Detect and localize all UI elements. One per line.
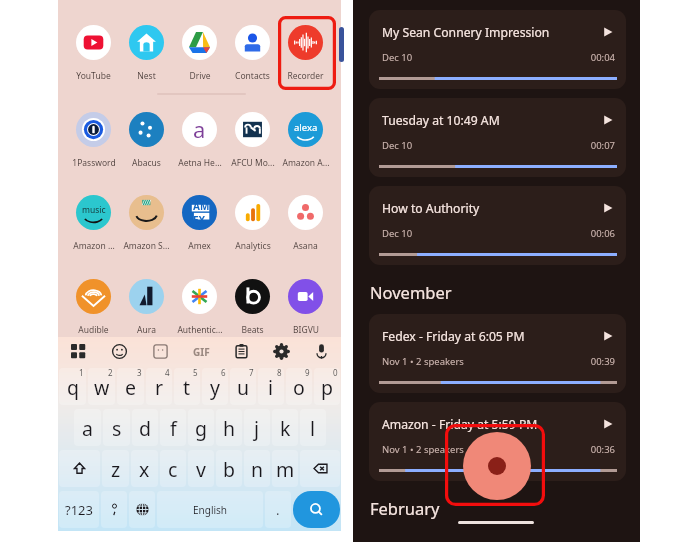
button[interactable]: Nest (120, 25, 173, 82)
button[interactable]: Play (598, 414, 618, 434)
staticText: . (276, 501, 280, 519)
button[interactable]: u (230, 368, 256, 405)
staticText: Audible (78, 324, 109, 336)
button[interactable]: globe (129, 491, 155, 528)
button[interactable]: BIGVU (279, 279, 332, 336)
button[interactable]: music (67, 195, 120, 252)
staticText: Amazon A... (282, 157, 330, 169)
button[interactable]: z (102, 450, 129, 487)
staticText: Drive (189, 70, 211, 82)
staticText: o (293, 374, 305, 401)
button[interactable]: ?123 (59, 491, 99, 528)
button[interactable]: g (188, 409, 214, 446)
button[interactable]: Aura (120, 279, 173, 336)
button[interactable]: Audible (67, 279, 120, 336)
staticText: n (251, 456, 264, 483)
button[interactable]: sticker (140, 337, 181, 366)
staticText: 3 (137, 368, 142, 378)
button[interactable]: Play (598, 22, 618, 42)
button[interactable]: s (103, 409, 130, 446)
staticText: Authentic... (177, 324, 223, 336)
staticText: music (82, 204, 106, 216)
staticText: My Sean Connery Impression (382, 24, 550, 41)
staticText: g (195, 415, 207, 442)
button[interactable]: Recorder (279, 25, 332, 82)
button[interactable]: a (173, 112, 226, 169)
button[interactable]: n (244, 450, 270, 487)
button[interactable]: AFCU Mo... (226, 112, 279, 169)
staticText: Dec 10 (382, 139, 413, 152)
staticText: Beats (241, 324, 264, 336)
staticText: English (193, 503, 228, 517)
button[interactable]: x (131, 450, 158, 487)
button[interactable]: f (160, 409, 186, 446)
button[interactable]: b (216, 450, 242, 487)
button[interactable]: e (117, 368, 144, 405)
button[interactable]: Contacts (226, 25, 279, 82)
button[interactable]: m (272, 450, 298, 487)
staticText: BIGVU (293, 324, 319, 336)
button[interactable]: grid (58, 337, 99, 366)
button[interactable]: backspace (300, 450, 340, 487)
button[interactable]: comma (101, 491, 127, 528)
button[interactable]: YouTube (67, 25, 120, 82)
button[interactable]: My Sean Connery Impression (369, 10, 626, 89)
staticText: x (139, 456, 150, 483)
button[interactable]: Drive (173, 25, 226, 82)
staticText: How to Authority (382, 200, 480, 217)
button[interactable]: Asana (279, 195, 332, 252)
button[interactable]: Amazon S... (120, 195, 173, 252)
button[interactable]: gif (181, 337, 221, 366)
button[interactable]: q (59, 368, 86, 405)
button[interactable]: c (160, 450, 186, 487)
button[interactable]: Tuesday at 10:49 AM (369, 98, 626, 177)
button[interactable]: mic (301, 337, 341, 366)
button[interactable]: 1Password (67, 112, 120, 169)
button[interactable]: . (265, 491, 291, 528)
button[interactable]: i (258, 368, 284, 405)
button[interactable]: a (74, 409, 101, 446)
staticText: Nest (137, 70, 156, 82)
staticText: k (280, 415, 291, 442)
button[interactable]: Fedex - Friday at 6:05 PM (369, 314, 626, 393)
button[interactable]: r (146, 368, 172, 405)
button[interactable]: v (188, 450, 214, 487)
button[interactable]: Abacus (120, 112, 173, 169)
button[interactable]: k (272, 409, 298, 446)
button[interactable]: Play (598, 326, 618, 346)
staticText: 00:04 (590, 51, 615, 64)
staticText: 8 (277, 368, 282, 378)
staticText: f (170, 415, 177, 442)
button[interactable]: o (286, 368, 312, 405)
staticText: 5 (193, 368, 198, 378)
button[interactable]: Authentic... (173, 279, 226, 336)
button[interactable]: w (88, 368, 115, 405)
button[interactable]: d (132, 409, 158, 446)
button[interactable]: y (202, 368, 228, 405)
staticText: Nov 1 • 2 speakers (382, 443, 464, 456)
button[interactable]: shift (59, 450, 100, 487)
button[interactable]: Play (598, 110, 618, 130)
staticText: Aetna He... (178, 157, 222, 169)
button[interactable]: Search (293, 491, 340, 528)
button[interactable]: Beats (226, 279, 279, 336)
button[interactable]: j (244, 409, 270, 446)
button[interactable]: t (174, 368, 200, 405)
button[interactable]: l (300, 409, 326, 446)
staticText: v (196, 456, 206, 483)
button[interactable]: h (216, 409, 242, 446)
button[interactable]: Analytics (226, 195, 279, 252)
button[interactable]: alexa (279, 112, 332, 169)
button[interactable]: emoji (99, 337, 140, 366)
button[interactable]: Play (598, 198, 618, 218)
staticText: h (223, 415, 236, 442)
button[interactable]: settings (261, 337, 301, 366)
staticText: Fedex - Friday at 6:05 PM (382, 328, 525, 345)
staticText: Asana (293, 240, 318, 252)
button[interactable]: p (314, 368, 340, 405)
button[interactable]: clipboard (221, 337, 261, 366)
button[interactable]: AM EX (173, 195, 226, 252)
button[interactable]: Amazon - Friday at 5:59 PM (369, 402, 626, 481)
button[interactable]: English (157, 491, 263, 528)
button[interactable]: How to Authority (369, 186, 626, 265)
